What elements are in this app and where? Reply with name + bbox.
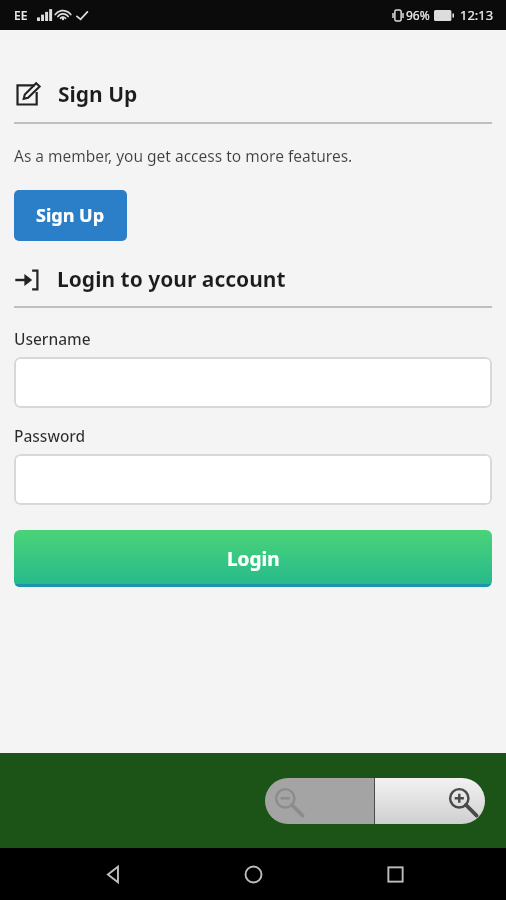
staticText: Login to your account: [57, 265, 286, 294]
staticText: Sign Up: [58, 80, 138, 109]
button[interactable]: [14, 357, 492, 408]
button[interactable]: Sign Up: [14, 190, 127, 241]
staticText: Username: [14, 328, 91, 349]
staticText: Sign Up: [36, 203, 105, 228]
button[interactable]: Login: [14, 530, 492, 587]
staticText: Password: [14, 425, 86, 446]
staticText: 12:13: [460, 6, 494, 24]
staticText: As a member, you get access to more feat…: [14, 145, 353, 166]
button[interactable]: Login: [0, 265, 506, 294]
button[interactable]: Sign Up: [0, 80, 506, 109]
staticText: 96%: [406, 7, 430, 23]
other: Login: [14, 267, 40, 293]
staticText: Login: [227, 546, 280, 572]
button[interactable]: Zoom out: [265, 778, 374, 824]
staticText: EE: [14, 7, 28, 23]
button[interactable]: Back: [82, 848, 142, 900]
button[interactable]: Recents: [365, 848, 425, 900]
button[interactable]: Home: [223, 848, 283, 900]
button[interactable]: Zoom in: [375, 778, 485, 824]
button[interactable]: [14, 454, 492, 505]
